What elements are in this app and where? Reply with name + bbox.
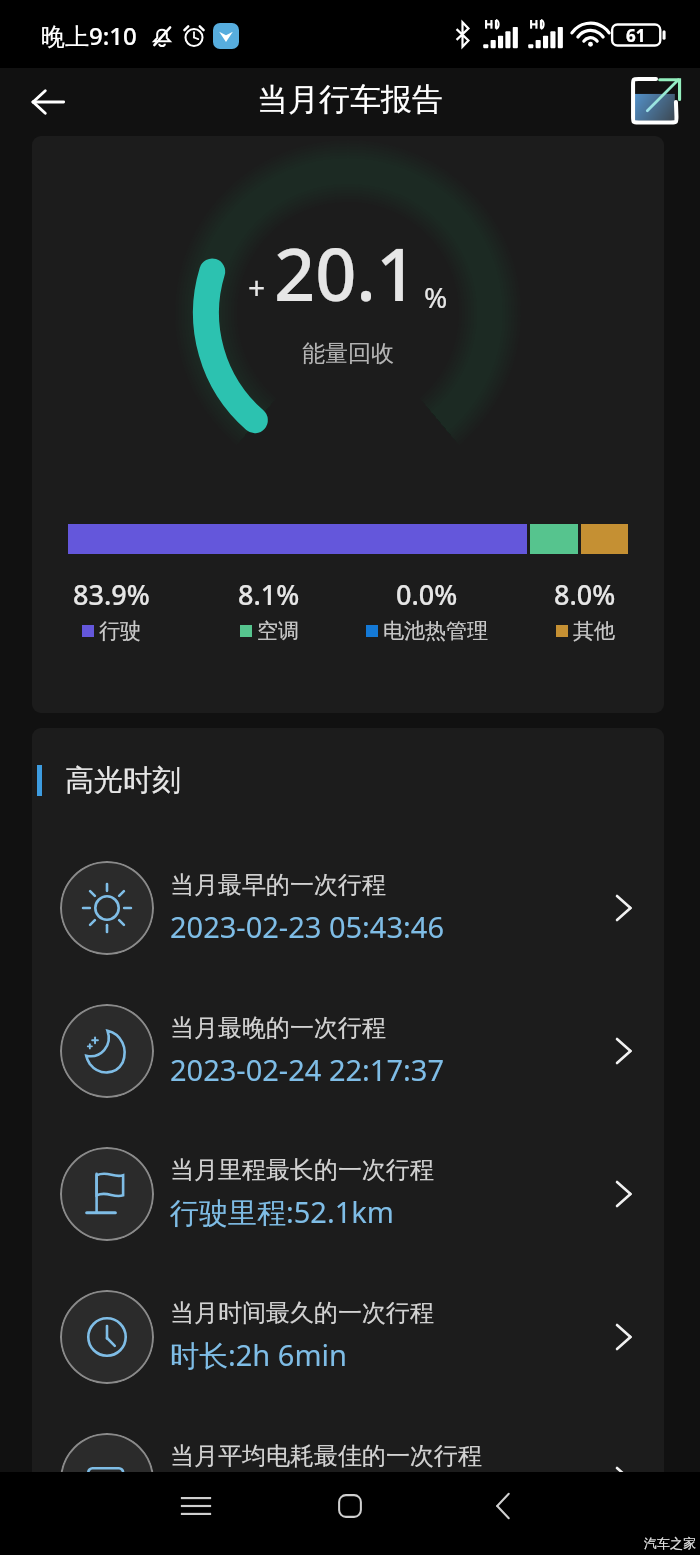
staticText: 汽车之家 <box>644 1535 696 1551</box>
other: Open <box>608 1322 638 1352</box>
staticText: 当月最早的一次行程 <box>170 870 386 900</box>
button[interactable]: Back <box>20 74 76 130</box>
staticText: 61 <box>626 24 646 47</box>
staticText: 时长:2h 6min <box>170 1335 347 1375</box>
staticText: 83.9% <box>73 576 150 613</box>
staticText: 其他 <box>573 618 615 644</box>
staticText: 电池热管理 <box>383 618 488 644</box>
other: Open <box>608 893 638 923</box>
staticText: 空调 <box>257 618 299 644</box>
staticText: 能量回收 <box>302 339 394 368</box>
staticText: 2023-02-23 05:43:46 <box>170 907 444 946</box>
staticText: 当月里程最长的一次行程 <box>170 1155 434 1185</box>
other: Open <box>608 1465 638 1472</box>
staticText: 当月平均电耗最佳的一次行程 <box>170 1441 482 1471</box>
staticText: 2023-02-24 22:17:37 <box>170 1050 444 1089</box>
staticText: 高光时刻 <box>65 762 181 799</box>
staticText: 8.0% <box>554 576 616 613</box>
button[interactable]: Recent apps <box>156 1472 236 1540</box>
button[interactable]: Home <box>310 1472 390 1540</box>
staticText: 当月最晚的一次行程 <box>170 1013 386 1043</box>
staticText: 晚上9:10 <box>41 19 137 52</box>
staticText: + <box>248 267 266 308</box>
button[interactable]: 当月最晚的一次行程 <box>32 979 664 1122</box>
other: Open <box>608 1179 638 1209</box>
staticText: 8.1% <box>238 576 300 613</box>
staticText: 当月时间最久的一次行程 <box>170 1298 434 1328</box>
button[interactable]: 当月平均电耗最佳的一次行程 <box>32 1408 664 1472</box>
staticText: 当月行车报告 <box>257 80 443 119</box>
staticText: 行驶里程:52.1km <box>170 1192 394 1232</box>
staticText: 行驶 <box>99 618 141 644</box>
staticText: 20.1 <box>274 224 418 322</box>
staticText: % <box>424 278 448 316</box>
button[interactable]: 当月里程最长的一次行程 <box>32 1122 664 1265</box>
staticText: 0.0% <box>396 576 458 613</box>
button[interactable]: Share <box>625 71 687 133</box>
button[interactable]: 当月时间最久的一次行程 <box>32 1265 664 1408</box>
other: Open <box>608 1036 638 1066</box>
button[interactable]: 当月最早的一次行程 <box>32 836 664 979</box>
button[interactable]: Back <box>464 1472 544 1540</box>
